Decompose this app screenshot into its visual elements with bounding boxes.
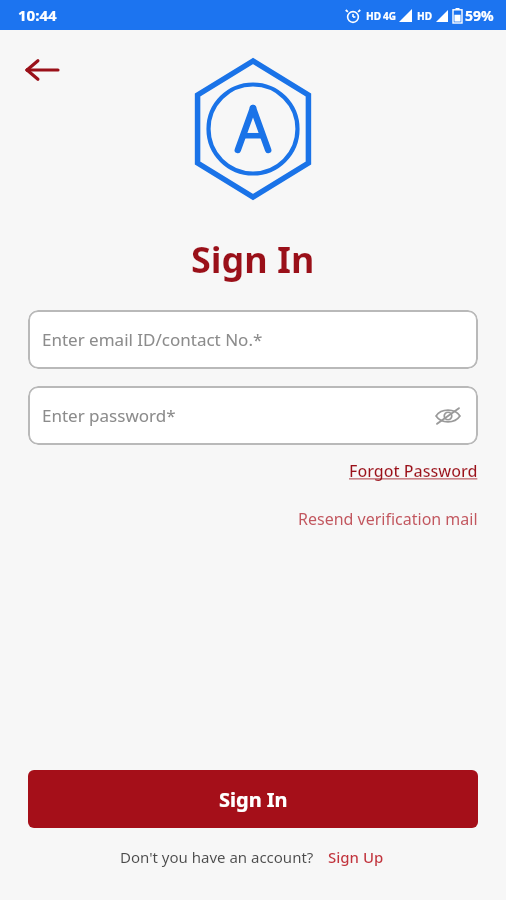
staticText: Forgot Password bbox=[349, 460, 478, 482]
button[interactable]: Resend verification mail bbox=[296, 505, 480, 533]
button[interactable]: Enter email ID/contact No.* bbox=[28, 310, 478, 369]
staticText: Enter email ID/contact No.* bbox=[42, 328, 263, 351]
button[interactable]: Enter password* bbox=[28, 386, 478, 445]
staticText: Sign In bbox=[191, 235, 315, 284]
staticText: Don't you have an account? bbox=[120, 847, 314, 867]
button[interactable]: Show password bbox=[430, 398, 466, 434]
staticText: HD bbox=[417, 9, 432, 23]
button[interactable]: Forgot Password bbox=[347, 457, 480, 485]
staticText: Resend verification mail bbox=[298, 508, 478, 530]
staticText: Enter password* bbox=[42, 404, 176, 427]
button[interactable]: Sign In bbox=[28, 770, 478, 828]
button[interactable]: Sign Up bbox=[326, 844, 386, 870]
staticText: Sign Up bbox=[328, 847, 384, 867]
staticText: Sign In bbox=[219, 786, 288, 813]
staticText: 4G bbox=[383, 9, 396, 23]
button[interactable]: Back bbox=[16, 44, 68, 96]
staticText: HD bbox=[366, 9, 381, 23]
staticText: 10:44 bbox=[18, 5, 57, 25]
staticText: 59% bbox=[465, 6, 494, 25]
